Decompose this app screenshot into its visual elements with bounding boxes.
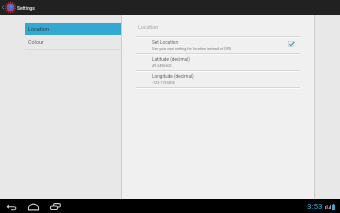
other: Set Location checkbox: [288, 41, 294, 47]
staticText: Longitude (decimal): [152, 74, 194, 80]
button[interactable]: Home: [22, 199, 44, 213]
staticText: Colour: [28, 39, 44, 45]
staticText: Latitude (decimal): [152, 57, 190, 63]
staticText: Location: [138, 24, 159, 30]
staticText: 49.2496600: [152, 64, 172, 68]
button[interactable]: Navigate up: [0, 0, 35, 15]
button[interactable]: Back: [0, 199, 22, 213]
staticText: Set Location: [152, 40, 179, 46]
staticText: -123.1193400: [152, 81, 175, 85]
staticText: Location: [28, 26, 49, 32]
button[interactable]: Set Location: [122, 38, 314, 53]
button[interactable]: Recent apps: [44, 199, 66, 213]
button[interactable]: Longitude (decimal): [122, 72, 314, 87]
button[interactable]: Latitude (decimal): [122, 55, 314, 70]
button[interactable]: Colour: [25, 35, 121, 49]
staticText: 3:53: [307, 202, 323, 211]
staticText: Settings: [17, 5, 35, 11]
staticText: Use your own setting for location instea…: [152, 47, 232, 51]
button[interactable]: Location: [25, 23, 121, 35]
